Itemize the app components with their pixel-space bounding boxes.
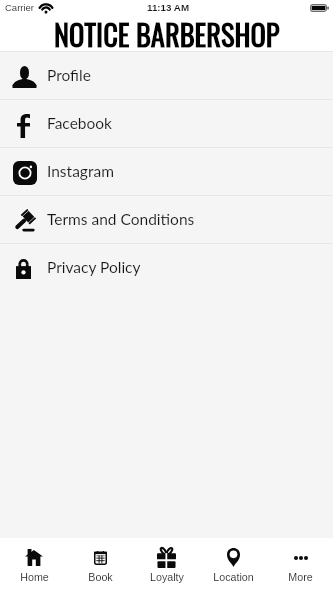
staticText: Instagram	[47, 162, 114, 181]
button[interactable]: Loyalty	[132, 538, 199, 592]
staticText: Book	[88, 571, 113, 583]
button[interactable]: Terms and Conditions	[0, 195, 333, 243]
button[interactable]: Instagram	[0, 147, 333, 195]
button[interactable]: Profile	[0, 51, 333, 99]
staticText: Loyalty	[150, 571, 184, 583]
button[interactable]: Privacy Policy	[0, 243, 333, 291]
staticText: NOTICE BARBERSHOP	[54, 13, 280, 55]
button[interactable]: Facebook	[0, 99, 333, 147]
button[interactable]: Home	[0, 538, 66, 592]
staticText: Home	[20, 571, 49, 583]
button[interactable]: Book	[66, 538, 132, 592]
staticText: Profile	[47, 66, 91, 85]
button[interactable]: Location	[199, 538, 266, 592]
staticText: Location	[213, 571, 254, 583]
button[interactable]: More	[266, 538, 333, 592]
staticText: Terms and Conditions	[47, 210, 195, 229]
staticText: 11:13 AM	[147, 2, 190, 13]
staticText: More	[288, 571, 313, 583]
staticText: Facebook	[47, 114, 112, 133]
staticText: Carrier	[5, 2, 35, 13]
staticText: Privacy Policy	[47, 258, 141, 277]
